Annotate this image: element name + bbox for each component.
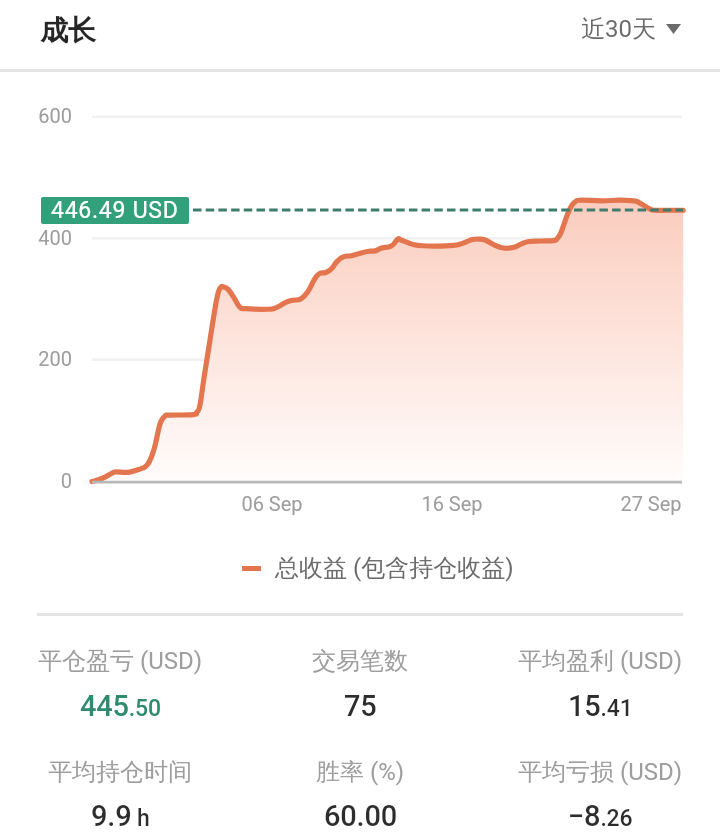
staticText: 400: [2, 226, 72, 249]
staticText: 75: [344, 689, 377, 723]
staticText: 平仓盈亏 (USD): [38, 646, 203, 676]
staticText: 胜率 (%): [316, 757, 405, 787]
staticText: 200: [2, 347, 72, 370]
staticText: −8.26: [568, 799, 633, 833]
other: Select date range: [666, 24, 681, 34]
staticText: 60.00: [324, 799, 397, 833]
staticText: 445.50: [80, 689, 161, 723]
staticText: 06 Sep: [202, 492, 342, 515]
staticText: 近30天: [581, 14, 656, 44]
staticText: 9.9 h: [91, 799, 150, 833]
staticText: 平均盈利 (USD): [518, 646, 683, 676]
staticText: 446.49 USD: [51, 197, 179, 224]
staticText: 0: [2, 469, 72, 492]
staticText: 27 Sep: [581, 492, 720, 515]
staticText: 16 Sep: [382, 492, 522, 515]
staticText: 交易笔数: [312, 646, 408, 676]
staticText: 600: [2, 104, 72, 127]
staticText: 平均持仓时间: [48, 757, 192, 787]
staticText: 15.41: [568, 689, 633, 723]
staticText: 成长: [40, 13, 96, 48]
button[interactable]: 近30天: [571, 9, 699, 49]
staticText: 总收益 (包含持仓收益): [275, 553, 514, 583]
staticText: 平均亏损 (USD): [518, 757, 683, 787]
